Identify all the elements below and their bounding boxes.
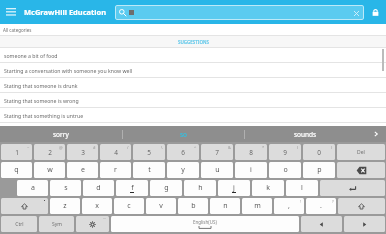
button[interactable]: More suggestions [366, 126, 386, 142]
button[interactable]: Settings [76, 216, 109, 232]
button[interactable]: Move cursor left [301, 216, 342, 232]
staticText: ? [332, 199, 334, 204]
button[interactable]: r [100, 162, 131, 178]
button[interactable]: Clear search [352, 9, 360, 17]
button[interactable]: Clear search [115, 5, 364, 20]
button[interactable]: Enter [320, 180, 385, 196]
button[interactable]: b [178, 198, 208, 214]
staticText: 8 [249, 148, 253, 157]
button[interactable]: Stating that someone is wrong [0, 93, 386, 107]
button[interactable]: Starting a conversation with someone you… [0, 63, 386, 77]
button[interactable]: 0 [303, 144, 335, 160]
button[interactable]: q [1, 162, 32, 178]
button[interactable]: d [83, 180, 114, 196]
staticText: m [254, 201, 261, 211]
staticText: 2 [48, 148, 52, 157]
button[interactable]: h [184, 180, 216, 196]
staticText: c [127, 201, 131, 211]
staticText: someone a bit of food [4, 52, 58, 59]
staticText: 9 [283, 148, 287, 157]
button[interactable]: l [286, 180, 318, 196]
button[interactable]: 7 [201, 144, 233, 160]
staticText: Stating that someone is wrong [4, 97, 79, 104]
staticText: Ctrl [15, 221, 24, 228]
staticText: Stating that someone is drunk [4, 82, 78, 89]
button[interactable]: o [269, 162, 301, 178]
staticText: i [250, 165, 252, 175]
staticText: # [93, 145, 96, 150]
button[interactable]: s [50, 180, 81, 196]
staticText: d [96, 183, 101, 193]
button[interactable]: 5 [133, 144, 165, 160]
button[interactable]: Space [111, 216, 299, 232]
staticText: t [148, 165, 151, 175]
button[interactable]: p [303, 162, 335, 178]
button[interactable]: Backspace [337, 162, 385, 178]
button[interactable]: g [150, 180, 182, 196]
button[interactable]: Sym [39, 216, 74, 232]
staticText: / [127, 145, 129, 150]
staticText: z [63, 201, 67, 211]
staticText: Del [357, 149, 365, 156]
staticText: p [317, 165, 322, 175]
staticText: @ [59, 145, 63, 150]
button[interactable]: Stating that something is untrue [0, 108, 386, 122]
button[interactable]: 9 [269, 144, 301, 160]
staticText: e [81, 165, 85, 175]
button[interactable]: x [82, 198, 112, 214]
button[interactable]: Shift [1, 198, 48, 214]
button[interactable]: sorry [0, 126, 122, 142]
button[interactable]: Move cursor right [344, 216, 385, 232]
button[interactable]: 4 [100, 144, 131, 160]
staticText: a [31, 183, 35, 193]
button[interactable]: Open navigation menu [0, 1, 22, 23]
button[interactable]: u [201, 162, 233, 178]
button[interactable]: v [146, 198, 176, 214]
button[interactable]: Ctrl [1, 216, 37, 232]
staticText: y [181, 165, 185, 175]
button[interactable]: t [133, 162, 165, 178]
button[interactable]: . [306, 198, 336, 214]
button[interactable]: m [242, 198, 272, 214]
button[interactable]: j [218, 180, 250, 196]
staticText: ^ [194, 145, 197, 150]
button[interactable]: Stating that someone is drunk [0, 78, 386, 92]
staticText: l [301, 183, 303, 193]
button[interactable]: a [17, 180, 48, 196]
staticText: 6 [181, 148, 185, 157]
staticText: All categories [3, 27, 32, 33]
staticText: ! [300, 199, 302, 204]
button[interactable]: c [114, 198, 144, 214]
button[interactable]: y [167, 162, 199, 178]
button[interactable]: e [67, 162, 98, 178]
button[interactable]: 6 [167, 144, 199, 160]
button[interactable]: Shift [338, 198, 385, 214]
button[interactable]: sounds [245, 126, 366, 142]
staticText: so [180, 130, 188, 139]
button[interactable]: 2 [34, 144, 65, 160]
button[interactable]: All categories [0, 24, 386, 35]
staticText: Starting a conversation with someone you… [4, 67, 133, 74]
button[interactable]: 1 [1, 144, 32, 160]
button[interactable]: z [50, 198, 80, 214]
staticText: ··· [103, 216, 107, 221]
button[interactable]: Del [337, 144, 385, 160]
button[interactable]: Secure [364, 0, 386, 24]
staticText: ) [331, 145, 333, 150]
button[interactable]: , [274, 198, 304, 214]
staticText: 1 [15, 148, 19, 157]
button[interactable]: so [123, 126, 244, 142]
button[interactable]: f [116, 180, 148, 196]
staticText: \ [161, 145, 163, 150]
button[interactable]: w [34, 162, 65, 178]
button[interactable]: someone a bit of food [0, 48, 386, 62]
button[interactable]: i [235, 162, 267, 178]
button[interactable]: k [252, 180, 284, 196]
staticText: w [47, 165, 53, 175]
button[interactable]: 3 [67, 144, 98, 160]
button[interactable]: n [210, 198, 240, 214]
button[interactable]: 8 [235, 144, 267, 160]
staticText: g [164, 183, 169, 193]
staticText: SUGGESTIONS [178, 39, 209, 45]
staticText: Stating that something is untrue [4, 112, 84, 119]
